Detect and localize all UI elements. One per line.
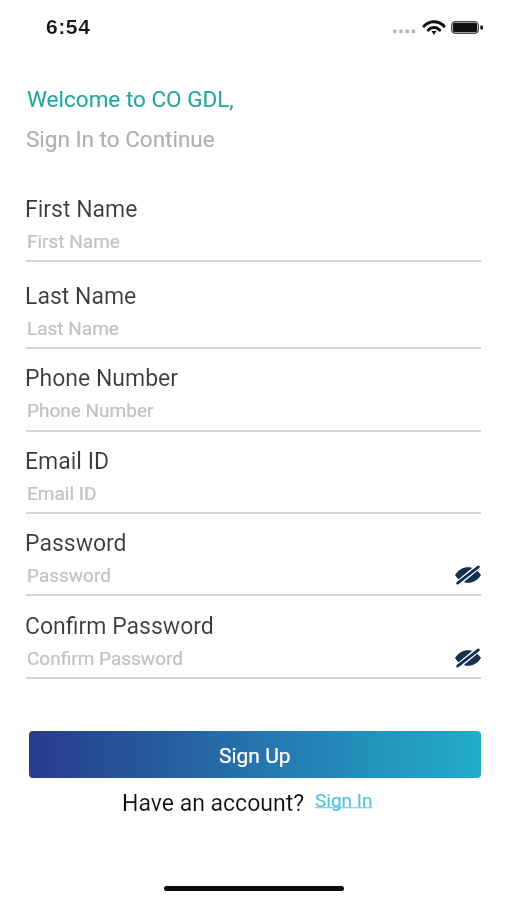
button[interactable]: Confirm Password — [26, 607, 481, 679]
staticText: Phone Number — [25, 365, 179, 392]
button[interactable]: Sign In — [311, 786, 369, 808]
staticText: Sign In to Continue — [26, 126, 215, 152]
staticText: Sign In — [315, 789, 373, 811]
staticText: First Name — [25, 196, 138, 223]
staticText: Password — [25, 530, 127, 557]
staticText: 6:54 — [46, 15, 91, 38]
button[interactable]: Show password — [453, 560, 483, 590]
staticText: Confirm Password — [25, 613, 214, 640]
staticText: Email ID — [25, 448, 109, 475]
staticText: Email ID — [27, 482, 97, 504]
staticText: Confirm Password — [27, 647, 183, 669]
staticText: Have an account? — [122, 790, 305, 817]
staticText: Password — [27, 564, 111, 586]
button[interactable]: First Name — [26, 190, 481, 262]
staticText: First Name — [27, 230, 120, 252]
staticText: Sign Up — [219, 744, 291, 769]
staticText: Last Name — [25, 283, 137, 310]
staticText: Last Name — [27, 317, 119, 339]
button[interactable]: Show password — [453, 643, 483, 673]
button[interactable]: Email ID — [26, 442, 481, 514]
button[interactable]: Password — [26, 524, 481, 596]
button[interactable]: Phone Number — [26, 359, 481, 432]
button[interactable]: Last Name — [26, 277, 481, 349]
button[interactable]: Sign Up — [29, 731, 481, 778]
staticText: Welcome to CO GDL, — [27, 86, 234, 112]
staticText: Phone Number — [27, 399, 154, 421]
